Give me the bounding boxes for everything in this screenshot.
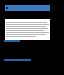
button[interactable]: Navigate up	[5, 5, 50, 11]
